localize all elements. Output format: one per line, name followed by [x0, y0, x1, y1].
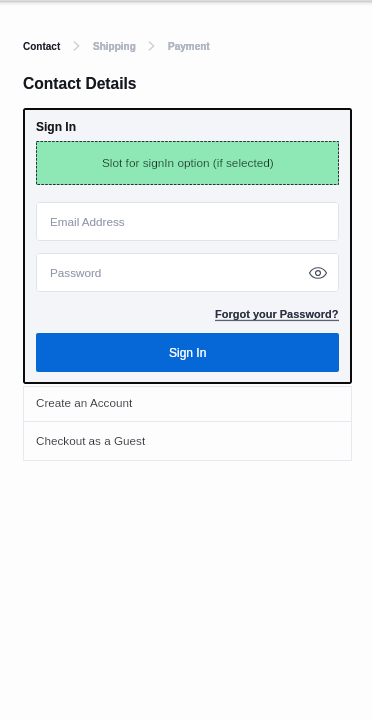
staticText: Email Address — [50, 215, 125, 228]
button[interactable]: Checkout as a Guest — [23, 422, 352, 461]
staticText: Shipping — [93, 41, 136, 52]
button[interactable]: Payment — [168, 41, 210, 52]
staticText: Contact — [23, 41, 61, 52]
button[interactable]: Create an Account — [23, 386, 352, 421]
button[interactable]: Email Address — [36, 202, 339, 241]
button[interactable]: Sign In — [36, 333, 339, 372]
staticText: Sign In — [36, 120, 76, 133]
staticText: Checkout as a Guest — [36, 434, 146, 447]
button[interactable]: Show password — [308, 263, 328, 283]
staticText: Shipping — [93, 41, 136, 52]
staticText: Forgot your Password? — [215, 308, 339, 320]
staticText: Sign In — [169, 346, 207, 359]
staticText: Forgot your Password? — [215, 308, 339, 320]
button[interactable]: Shipping — [93, 41, 136, 52]
staticText: Payment — [168, 41, 210, 52]
staticText: Create an Account — [36, 396, 133, 409]
button[interactable]: Forgot your Password? — [215, 308, 339, 320]
staticText: Password — [50, 266, 102, 279]
button[interactable]: Contact — [23, 41, 61, 52]
staticText: Sign In — [36, 120, 76, 133]
staticText: Contact Details — [23, 75, 137, 92]
staticText: Payment — [168, 41, 210, 52]
button[interactable]: Password — [36, 253, 339, 292]
staticText: Contact — [23, 41, 61, 52]
staticText: Slot for signIn option (if selected) — [102, 156, 274, 169]
staticText: Contact Details — [23, 75, 137, 92]
